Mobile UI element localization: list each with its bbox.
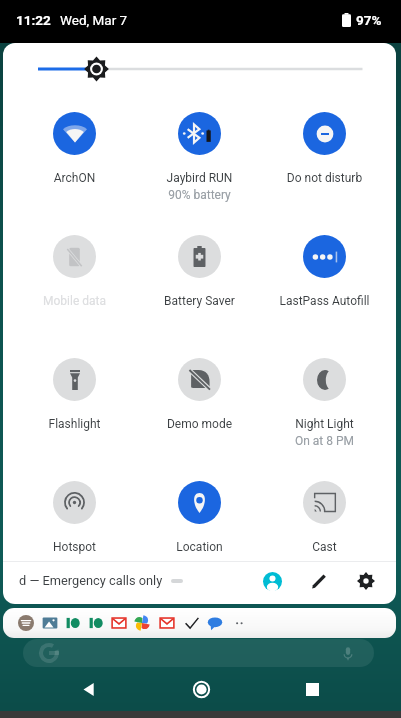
staticText: Mobile data [12,294,137,308]
staticText: LastPass Autofill [262,294,387,308]
button[interactable]: LastPass Autofill [262,218,387,341]
staticText: Demo mode [137,417,262,431]
staticText: 97% [356,12,382,28]
button[interactable]: Cast [262,464,387,587]
staticText: 90% battery [137,188,262,202]
staticText: Night Light [262,417,387,431]
staticText: d — Emergency calls only [19,573,163,588]
staticText: Hotspot [12,540,137,554]
button[interactable]: Home [179,667,223,711]
button[interactable]: User [255,564,289,598]
button[interactable]: Back [67,667,111,711]
button[interactable]: Jaybird RUN [137,95,262,218]
button[interactable]: Settings [349,564,383,598]
button[interactable]: Edit tiles [302,564,336,598]
staticText: ArchON [12,171,137,185]
button[interactable]: Flashlight [12,341,137,464]
button[interactable]: ArchON [12,95,137,218]
button[interactable]: Night Light [262,341,387,464]
button[interactable]: Demo mode [137,341,262,464]
button[interactable] [3,608,396,638]
staticText: Flashlight [12,417,137,431]
staticText: Cast [262,540,387,554]
button[interactable]: Recents [290,667,334,711]
button[interactable]: Location [137,464,262,587]
button[interactable]: Battery Saver [137,218,262,341]
button[interactable]: Mobile data [12,218,137,341]
button[interactable]: Do not disturb [262,95,387,218]
staticText: Do not disturb [262,171,387,185]
button[interactable]: Hotspot [12,464,137,587]
staticText: Jaybird RUN [137,171,262,185]
staticText: Battery Saver [137,294,262,308]
button[interactable] [3,43,396,95]
staticText: 11:22 [16,12,51,28]
staticText: On at 8 PM [262,434,387,448]
staticText: Wed, Mar 7 [60,12,128,28]
staticText: Location [137,540,262,554]
